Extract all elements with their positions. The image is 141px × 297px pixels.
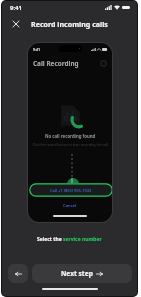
- staticText: No call recording found: [45, 133, 96, 139]
- button[interactable]: Call +1 (855) 955-1533: [29, 183, 112, 197]
- staticText: Click the record button to start recordi…: [30, 142, 110, 146]
- button[interactable]: Back: [8, 264, 28, 283]
- staticText: 9:41: [10, 4, 22, 12]
- staticText: Next step: [61, 269, 93, 278]
- staticText: Cancel: [63, 203, 77, 209]
- staticText: Call +1 (855) 955-1533: [50, 188, 92, 193]
- button[interactable]: Cancel: [28, 201, 112, 210]
- staticText: Call Recording: [33, 59, 79, 68]
- staticText: Select the service number: [37, 236, 102, 243]
- button[interactable]: Close: [8, 16, 23, 31]
- staticText: Record incoming calls: [31, 19, 108, 29]
- staticText: 9:41: [33, 47, 41, 52]
- button[interactable]: Next step: [32, 264, 132, 283]
